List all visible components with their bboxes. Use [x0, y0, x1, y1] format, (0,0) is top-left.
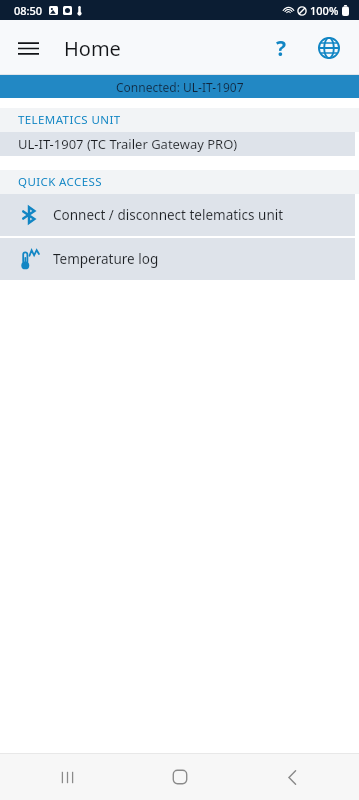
staticText: ?	[276, 34, 287, 63]
staticText: Connected: UL-IT-1907	[116, 79, 244, 95]
button[interactable]: UL-IT-1907 (TC Trailer Gateway PRO)	[0, 132, 355, 156]
staticText: Connect / disconnect telematics unit	[53, 206, 284, 224]
staticText: 100%	[310, 3, 339, 18]
button[interactable]: Home	[135, 754, 225, 800]
button[interactable]: Connect / disconnect telematics unit	[0, 194, 355, 236]
staticText: 08:50	[14, 3, 43, 18]
button[interactable]: Help	[259, 26, 303, 70]
staticText: QUICK ACCESS	[18, 174, 102, 190]
staticText: Home	[64, 35, 121, 62]
button[interactable]: Back	[247, 754, 337, 800]
staticText: TELEMATICS UNIT	[18, 112, 121, 128]
button[interactable]: Change language	[307, 26, 351, 70]
staticText: Temperature log	[53, 250, 159, 268]
button[interactable]: Recent apps	[22, 754, 112, 800]
button[interactable]: Open navigation menu	[6, 26, 50, 70]
button[interactable]: Temperature log	[0, 238, 355, 280]
staticText: UL-IT-1907 (TC Trailer Gateway PRO)	[18, 135, 238, 153]
